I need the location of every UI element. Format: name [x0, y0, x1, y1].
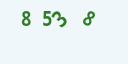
staticText: 5	[42, 2, 53, 32]
staticText: 3	[44, 2, 74, 33]
staticText: 8	[78, 3, 101, 34]
staticText: 8	[21, 2, 32, 32]
